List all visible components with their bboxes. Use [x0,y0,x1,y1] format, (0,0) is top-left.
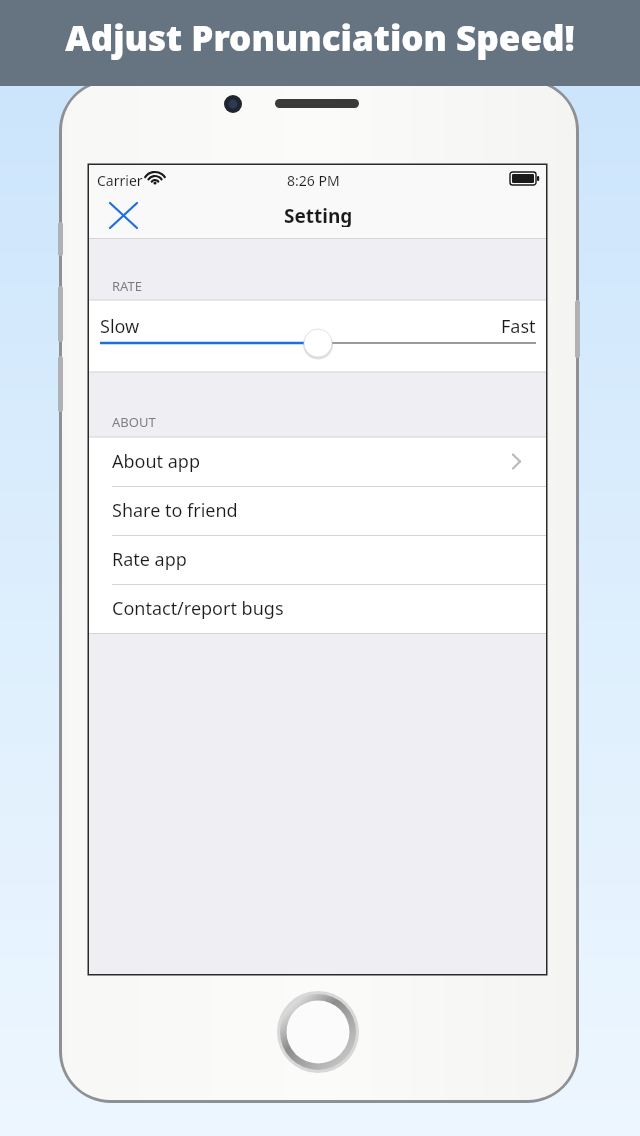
staticText: Adjust Pronunciation Speed! [14,14,626,74]
button[interactable]: Contact/report bugs [89,584,546,633]
staticText: Contact/report bugs [112,596,284,621]
button[interactable]: Speech rate slider [89,300,546,372]
staticText: About app [112,449,201,474]
staticText: Carrier [97,171,143,190]
staticText: Share to friend [112,498,238,523]
button[interactable]: About app [89,437,546,486]
staticText: Rate app [112,547,187,572]
button[interactable]: Rate app [89,535,546,584]
staticText: Slow [100,314,140,339]
staticText: ABOUT [112,413,156,431]
button[interactable]: Close [97,192,149,238]
button[interactable]: Share to friend [89,486,546,535]
staticText: Setting [284,203,353,227]
staticText: RATE [112,277,142,295]
staticText: 8:26 PM [287,171,340,190]
staticText: Fast [501,314,536,339]
